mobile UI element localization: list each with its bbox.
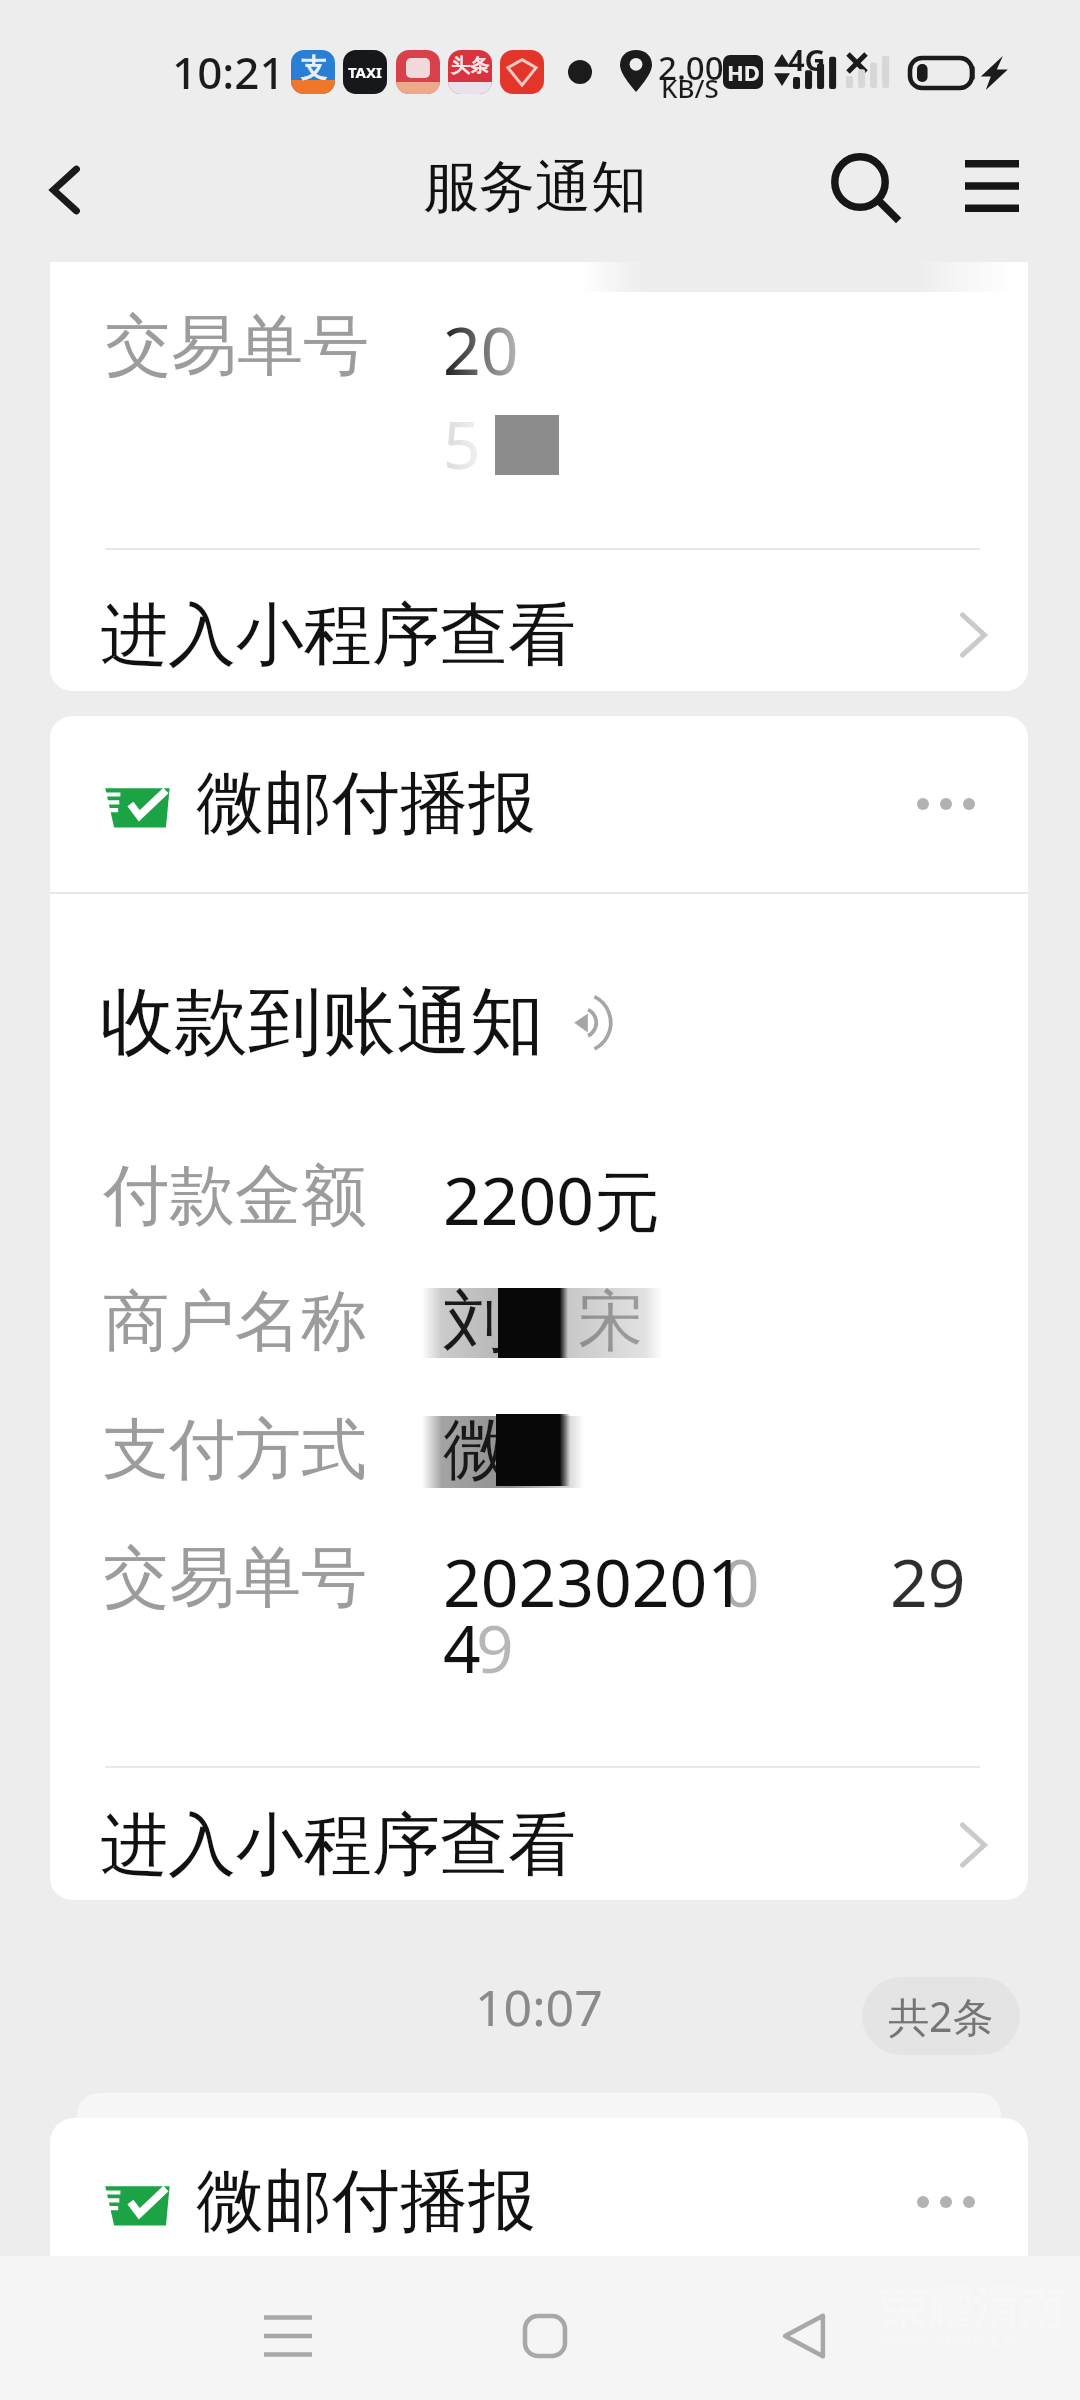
staticText: 付款金额 xyxy=(103,1154,367,1237)
staticText: 商户名称 xyxy=(103,1280,367,1363)
staticText: 20 xyxy=(443,304,519,394)
staticText: 10:07 xyxy=(475,1973,603,2041)
button[interactable]: Home xyxy=(495,2286,595,2386)
button[interactable]: 进入小程序查看 xyxy=(50,578,1028,691)
button[interactable]: Search xyxy=(816,138,912,234)
staticText: 4 xyxy=(443,1602,481,1692)
staticText: 收款到账通知 xyxy=(100,976,544,1069)
staticText: 9 xyxy=(476,1602,514,1692)
staticText: 微邮付播报 xyxy=(196,761,536,847)
button[interactable]: 微邮付播报 xyxy=(50,2118,1028,2258)
staticText: 进入小程序查看 xyxy=(100,1803,576,1889)
staticText: 服务通知 xyxy=(423,152,647,223)
staticText: 支 xyxy=(301,52,327,85)
button[interactable] xyxy=(50,894,1028,1766)
button[interactable]: Back xyxy=(754,2286,854,2386)
button[interactable]: Back xyxy=(18,142,114,238)
staticText: 0 xyxy=(722,1536,760,1626)
staticText: 交易单号 xyxy=(105,304,369,387)
staticText: 2.00 xyxy=(658,45,724,90)
button[interactable]: Recents xyxy=(238,2286,338,2386)
staticText: 宋 xyxy=(578,1280,644,1363)
staticText: 微 xyxy=(443,1408,509,1491)
button[interactable]: 交易单号 xyxy=(50,262,1028,691)
staticText: 共2条 xyxy=(888,1988,994,2044)
staticText: 进入小程序查看 xyxy=(100,593,576,679)
staticText: HD xyxy=(727,57,760,87)
staticText: 微邮付播报 xyxy=(196,2159,536,2245)
staticText: 4G xyxy=(788,40,826,79)
button[interactable]: 微邮付播报 xyxy=(50,716,1028,892)
button[interactable]: 共2条 xyxy=(862,1977,1020,2055)
staticText: 头条 xyxy=(451,54,489,78)
staticText: 交易单号 xyxy=(103,1536,367,1619)
button[interactable]: 进入小程序查看 xyxy=(50,1788,1028,1900)
staticText: 5 xyxy=(443,398,481,488)
button[interactable]: 微邮付播报 xyxy=(50,2132,1028,2258)
button[interactable]: Menu xyxy=(944,138,1040,234)
staticText: 29 xyxy=(890,1536,966,1626)
staticText: 刘 xyxy=(443,1280,509,1363)
staticText: 2200元 xyxy=(443,1154,661,1244)
staticText: 20230201 xyxy=(443,1536,746,1626)
staticText: 10:21 xyxy=(172,42,285,102)
staticText: TAXI xyxy=(348,62,382,82)
staticText: 支付方式 xyxy=(103,1408,367,1491)
staticText: KB/S xyxy=(661,70,719,105)
